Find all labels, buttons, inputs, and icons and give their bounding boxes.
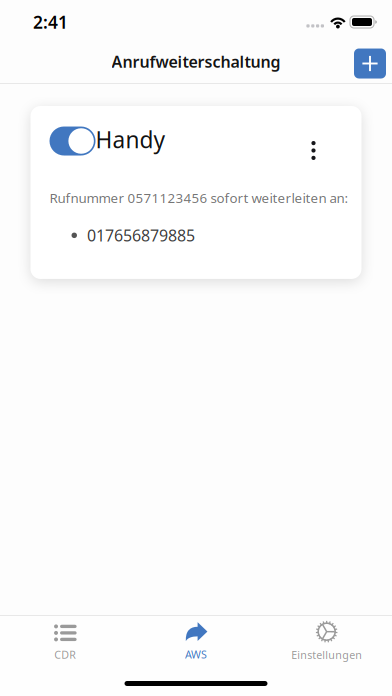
staticText: Anrufweiterschaltung (111, 51, 280, 72)
button[interactable]: CDR (0, 616, 131, 666)
staticText: AWS (185, 647, 207, 661)
staticText: Handy (95, 124, 165, 154)
staticText: Einstellungen (291, 648, 362, 662)
button[interactable]: Weiterleitung Handy aktiviert (49, 126, 95, 155)
staticText: 2:41 (33, 10, 68, 33)
staticText: 017656879885 (87, 225, 195, 246)
button[interactable]: Einstellungen (261, 616, 392, 666)
staticText: Rufnummer 0571123456 sofort weiterleiten… (49, 189, 348, 207)
button[interactable]: Hinzufügen (354, 48, 386, 78)
staticText: CDR (54, 647, 76, 662)
button[interactable]: Mehr Optionen (297, 122, 329, 160)
button[interactable]: AWS (131, 616, 261, 666)
